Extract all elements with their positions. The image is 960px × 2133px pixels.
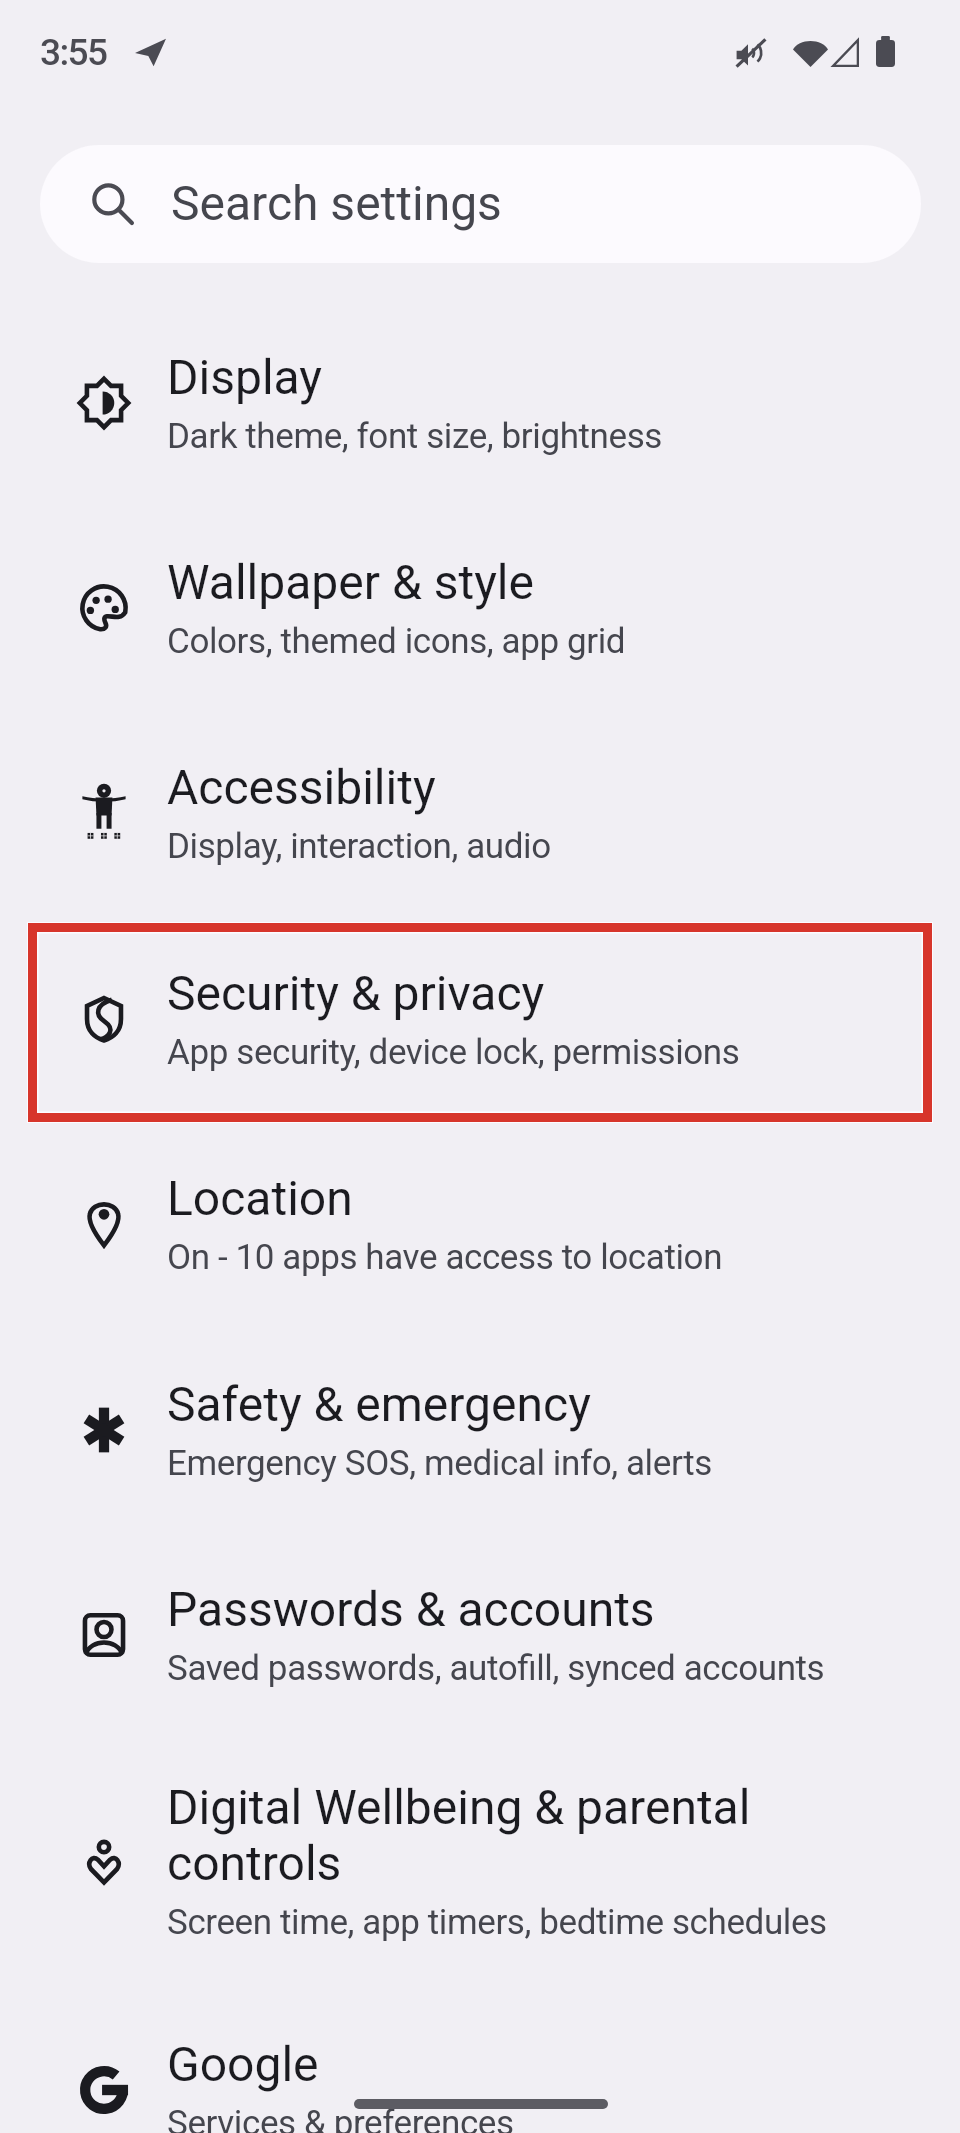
button[interactable]: Search xyxy=(40,145,921,263)
other: Wi-Fi xyxy=(793,38,828,67)
other: Mobile signal xyxy=(832,39,859,67)
staticText: Digital Wellbeing & parental controls xyxy=(167,1779,893,1891)
other: Location in use xyxy=(135,38,166,67)
staticText: Security & privacy xyxy=(167,965,545,1021)
staticText: Search settings xyxy=(171,175,502,231)
staticText: Wallpaper & style xyxy=(167,554,534,610)
staticText: Display, interaction, audio xyxy=(167,826,551,867)
staticText: Safety & emergency xyxy=(167,1376,591,1432)
staticText: Location xyxy=(167,1170,353,1226)
staticText: Services & preferences xyxy=(167,2103,514,2133)
other: Search xyxy=(92,183,134,225)
button[interactable]: Google xyxy=(0,1985,960,2133)
staticText: Screen time, app timers, bedtime schedul… xyxy=(167,1902,827,1943)
button[interactable]: Safety & emergency xyxy=(0,1327,960,1532)
button[interactable]: Display xyxy=(0,300,960,505)
button[interactable]: Wallpaper & style xyxy=(0,505,960,710)
other: Ringer silent xyxy=(736,39,766,67)
staticText: App security, device lock, permissions xyxy=(167,1032,740,1073)
staticText: Accessibility xyxy=(167,759,436,815)
staticText: Display xyxy=(167,349,323,405)
button[interactable]: Accessibility xyxy=(0,710,960,915)
staticText: On - 10 apps have access to location xyxy=(167,1237,723,1278)
staticText: Google xyxy=(167,2036,319,2092)
button[interactable]: Digital Wellbeing & parental controls xyxy=(0,1737,960,1985)
staticText: Saved passwords, autofill, synced accoun… xyxy=(167,1648,825,1689)
other: Battery xyxy=(876,36,895,67)
button[interactable]: Security & privacy xyxy=(0,916,960,1121)
staticText: Passwords & accounts xyxy=(167,1581,655,1637)
staticText: Colors, themed icons, app grid xyxy=(167,621,626,662)
button[interactable]: Location xyxy=(0,1121,960,1326)
staticText: 3:55 xyxy=(40,31,107,74)
staticText: Dark theme, font size, brightness xyxy=(167,416,663,457)
button[interactable]: Passwords & accounts xyxy=(0,1532,960,1737)
staticText: Emergency SOS, medical info, alerts xyxy=(167,1443,712,1484)
